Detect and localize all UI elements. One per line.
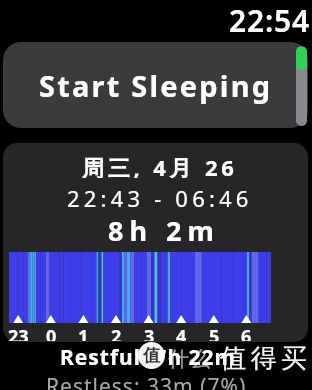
- staticText: 周三, 4月 26: [82, 152, 238, 178]
- staticText: 2: [111, 324, 122, 341]
- staticText: 6: [241, 324, 252, 341]
- staticText: 值: [143, 345, 160, 366]
- staticText: 22:43 - 06:46: [67, 183, 253, 209]
- staticText: 23: [8, 324, 29, 341]
- button[interactable]: Start Sleeping: [3, 42, 308, 128]
- staticText: Restful: 7h 22m: [60, 343, 236, 372]
- staticText: Restless: 33m (7%): [46, 372, 247, 390]
- button[interactable]: [3, 143, 308, 342]
- staticText: 1: [78, 324, 89, 341]
- staticText: 3: [144, 324, 155, 341]
- staticText: Start Sleeping: [39, 66, 273, 105]
- staticText: 8h 2m: [108, 212, 220, 242]
- staticText: 值得买: [220, 342, 312, 375]
- staticText: 4: [176, 324, 187, 341]
- staticText: 5: [209, 324, 220, 341]
- staticText: 什么: [168, 346, 210, 372]
- staticText: 0: [46, 324, 57, 341]
- staticText: 22:54: [229, 0, 310, 36]
